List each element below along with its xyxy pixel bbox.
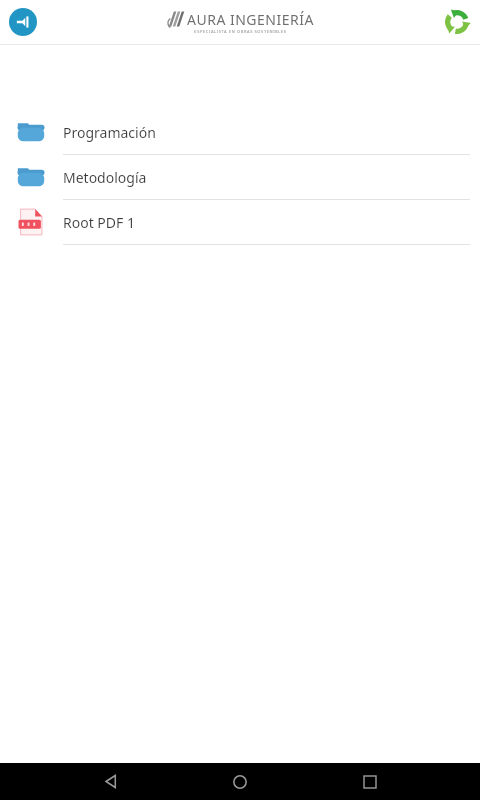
staticText: Root PDF 1 (63, 213, 135, 232)
button[interactable]: Log in (8, 7, 38, 37)
button[interactable]: Home (220, 763, 260, 800)
staticText: Metodología (63, 168, 147, 187)
button[interactable]: Refresh (442, 7, 472, 37)
button[interactable]: Programación (0, 110, 480, 155)
button[interactable]: Metodología (0, 155, 480, 200)
staticText: AURA INGENIERÍA (187, 10, 314, 29)
staticText: ESPECIALISTA EN OBRAS SOSTENIBLES (194, 29, 287, 34)
button[interactable]: Root PDF 1 (0, 200, 480, 245)
button[interactable]: Back (90, 763, 130, 800)
button[interactable]: Recent apps (350, 763, 390, 800)
staticText: Programación (63, 123, 156, 142)
